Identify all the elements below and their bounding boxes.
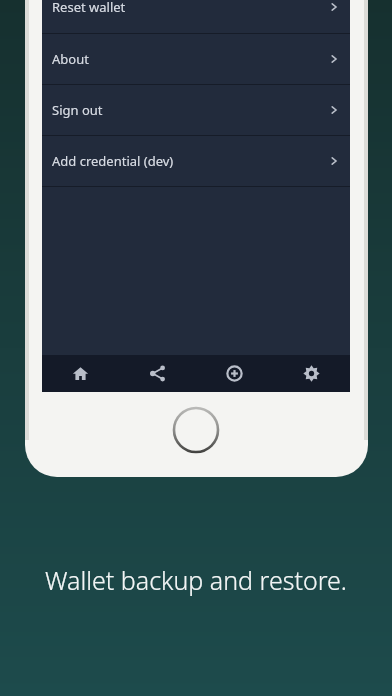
button[interactable]: Home [42,355,119,392]
staticText: Sign out [52,101,103,119]
button[interactable]: Settings [273,355,350,392]
staticText: About [52,50,89,68]
staticText: Add credential (dev) [52,152,174,170]
button[interactable]: Add [196,355,273,392]
staticText: Wallet backup and restore. [0,563,392,597]
other: Home button [171,405,221,455]
button[interactable]: Share [119,355,196,392]
staticText: Reset wallet [52,0,126,16]
button[interactable]: Sign out [42,85,350,135]
button[interactable]: Reset wallet [42,0,350,33]
button[interactable]: Add credential (dev) [42,136,350,186]
button[interactable]: About [42,34,350,84]
